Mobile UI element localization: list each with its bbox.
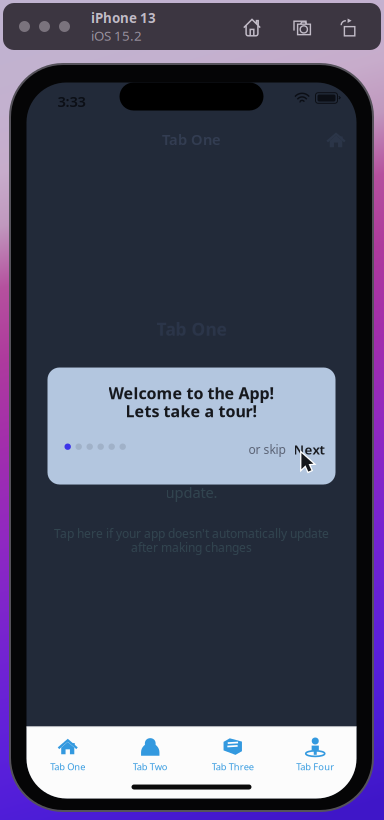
button[interactable]: Home bbox=[320, 126, 351, 154]
staticText: Tab One bbox=[156, 317, 226, 340]
button[interactable]: Screenshot bbox=[286, 12, 319, 43]
staticText: update. bbox=[165, 482, 217, 502]
staticText: Tap here if your app doesn't automatical… bbox=[54, 525, 329, 541]
button[interactable]: Next bbox=[291, 438, 326, 460]
staticText: Tab Two bbox=[133, 760, 168, 773]
staticText: Tab Four bbox=[296, 760, 334, 773]
button[interactable]: Home bbox=[237, 12, 267, 43]
staticText: after making changes bbox=[131, 539, 252, 555]
staticText: 3:33 bbox=[57, 91, 85, 111]
staticText: Tab One bbox=[162, 129, 221, 149]
staticText: iPhone 13 bbox=[91, 9, 156, 27]
staticText: iOS 15.2 bbox=[91, 27, 142, 44]
button[interactable]: Rotate bbox=[334, 12, 363, 43]
staticText: Lets take a tour! bbox=[125, 400, 257, 422]
button[interactable]: Tab Three bbox=[191, 726, 274, 775]
staticText: Tab One bbox=[50, 760, 85, 773]
staticText: Tab Three bbox=[212, 760, 254, 773]
staticText: Next bbox=[293, 440, 324, 458]
button[interactable]: or skip bbox=[246, 439, 287, 459]
button[interactable]: Tab Four bbox=[274, 726, 356, 775]
staticText: or skip bbox=[248, 441, 285, 457]
staticText: Welcome to the App! bbox=[108, 382, 274, 404]
button[interactable]: Tab Two bbox=[109, 726, 191, 775]
button[interactable]: Tab One bbox=[26, 726, 109, 775]
